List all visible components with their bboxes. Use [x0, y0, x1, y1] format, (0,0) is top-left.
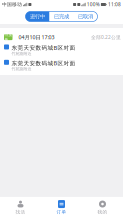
staticText: 找活 [15, 209, 25, 215]
staticText: 已取消 [78, 13, 93, 20]
staticText: 全部0.22公里 [91, 34, 121, 40]
staticText: 待接单 [4, 32, 12, 42]
staticText: 04月10日 17:03 [18, 33, 54, 41]
staticText: 已完成 [54, 13, 69, 20]
staticText: 竹苑路附近 [11, 66, 31, 71]
staticText: 订单 [56, 209, 66, 215]
staticText: 11:08 [108, 1, 121, 8]
staticText: 我的 [97, 209, 107, 215]
staticText: 东莞天安数码城B区对面 [11, 59, 75, 67]
button[interactable]: 待接单 [0, 28, 123, 75]
button[interactable]: 订单 [41, 196, 82, 218]
staticText: 中国移动 [2, 1, 22, 7]
button[interactable]: 已完成 [49, 11, 73, 21]
button[interactable]: 我的 [82, 196, 123, 218]
staticText: 100% [87, 1, 100, 8]
button[interactable]: 找活 [0, 196, 41, 218]
button[interactable]: 进行中 [25, 11, 49, 21]
staticText: 东莞天安数码城B区对面 [11, 44, 75, 52]
staticText: 竹苑路附近 [11, 51, 31, 56]
button[interactable]: 已取消 [73, 11, 97, 21]
staticText: 进行中 [30, 13, 45, 20]
